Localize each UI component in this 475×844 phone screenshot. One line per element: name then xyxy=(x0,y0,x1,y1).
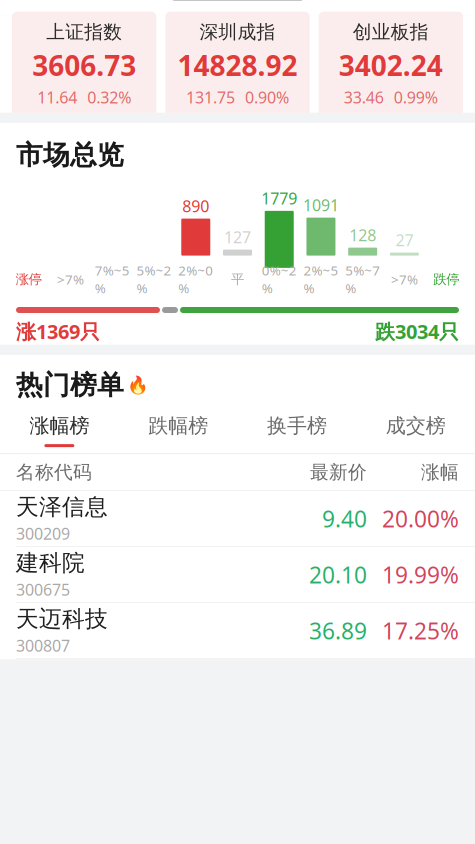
staticText: 20.00% xyxy=(382,504,459,534)
staticText: 127 xyxy=(224,226,251,247)
staticText: 5%~2% xyxy=(136,262,171,297)
staticText: >7% xyxy=(57,270,84,288)
staticText: 0.99% xyxy=(394,87,438,108)
button[interactable]: 天迈科技 xyxy=(0,603,475,658)
staticText: 创业板指 xyxy=(353,21,429,44)
staticText: 1779 xyxy=(261,188,297,209)
staticText: 热门榜单 xyxy=(16,369,124,402)
staticText: 成交榜 xyxy=(386,414,446,438)
staticText: 涨1369只 xyxy=(16,318,100,345)
staticText: 2%~0% xyxy=(178,262,213,297)
staticText: 最新价 xyxy=(310,461,367,484)
staticText: 1091 xyxy=(303,194,339,215)
staticText: 市场总览 xyxy=(16,139,124,172)
staticText: 涨停 xyxy=(16,271,42,287)
staticText: 天迈科技 xyxy=(16,605,108,633)
staticText: 3606.73 xyxy=(32,47,136,84)
staticText: 上证指数 xyxy=(46,21,122,44)
staticText: 涨幅榜 xyxy=(29,414,89,438)
staticText: 深圳成指 xyxy=(199,21,275,44)
staticText: 11.64 xyxy=(37,87,77,108)
staticText: 平 xyxy=(231,271,244,287)
button[interactable]: 换手榜 xyxy=(237,414,356,453)
staticText: 131.75 xyxy=(186,87,235,108)
staticText: 128 xyxy=(349,224,376,245)
staticText: 0.32% xyxy=(87,87,131,108)
button[interactable]: 跌幅榜 xyxy=(119,414,238,453)
button[interactable]: 深圳成指 xyxy=(165,12,310,117)
staticText: 换手榜 xyxy=(267,414,327,438)
staticText: 0%~2% xyxy=(262,262,297,297)
staticText: 跌幅榜 xyxy=(148,414,208,438)
button[interactable]: 上证指数 xyxy=(12,12,156,117)
staticText: 2%~5% xyxy=(303,262,338,297)
staticText: 跌停 xyxy=(433,271,459,287)
staticText: >7% xyxy=(391,270,418,288)
staticText: 3402.24 xyxy=(339,47,443,84)
staticText: 0.90% xyxy=(245,87,289,108)
staticText: 14828.92 xyxy=(177,47,297,84)
staticText: 890 xyxy=(182,195,209,216)
staticText: 33.46 xyxy=(344,87,384,108)
staticText: 🔥 xyxy=(127,375,149,395)
staticText: 19.99% xyxy=(382,560,459,590)
staticText: 涨幅 xyxy=(421,461,459,484)
staticText: 9.40 xyxy=(322,504,367,534)
staticText: 300209 xyxy=(16,523,70,544)
staticText: 天泽信息 xyxy=(16,493,108,521)
staticText: 5%~7% xyxy=(345,262,380,297)
staticText: 17.25% xyxy=(382,616,459,646)
staticText: 7%~5% xyxy=(95,262,130,297)
staticText: 36.89 xyxy=(309,616,367,646)
button[interactable]: 涨幅榜 xyxy=(0,414,119,453)
staticText: 建科院 xyxy=(16,549,85,577)
staticText: 300807 xyxy=(16,635,70,656)
button[interactable]: 天泽信息 xyxy=(0,491,475,546)
staticText: 300675 xyxy=(16,579,70,600)
staticText: 跌3034只 xyxy=(375,318,459,345)
button[interactable]: 创业板指 xyxy=(319,12,463,117)
staticText: 20.10 xyxy=(309,560,367,590)
button[interactable]: 建科院 xyxy=(0,547,475,602)
button[interactable]: 成交榜 xyxy=(356,414,475,453)
staticText: 名称代码 xyxy=(16,461,92,484)
staticText: 27 xyxy=(395,229,413,250)
